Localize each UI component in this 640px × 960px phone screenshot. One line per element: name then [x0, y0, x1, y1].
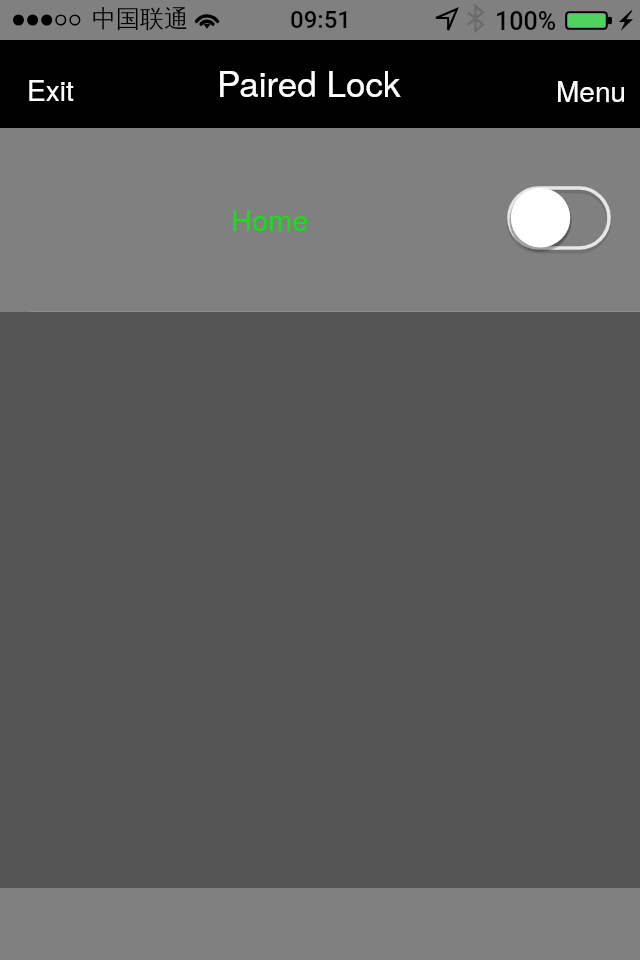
button[interactable]: Exit — [9, 57, 91, 121]
button[interactable]: Home — [0, 128, 640, 312]
button[interactable]: Home toggle — [507, 186, 611, 250]
button[interactable]: Menu — [543, 64, 639, 116]
staticText: 09:51 — [290, 6, 351, 34]
staticText: 中国联通 — [92, 4, 188, 34]
staticText: Menu — [556, 70, 627, 110]
staticText: Paired Lock — [217, 57, 401, 107]
staticText: Exit — [27, 69, 74, 109]
staticText: 100% — [495, 7, 556, 36]
staticText: Home — [231, 198, 309, 240]
